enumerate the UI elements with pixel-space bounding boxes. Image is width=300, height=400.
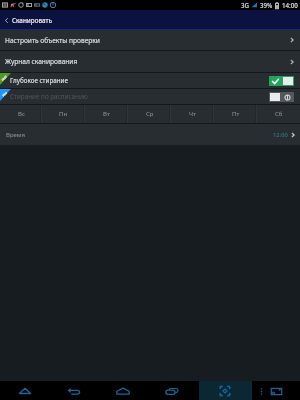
staticText: Вт <box>103 110 110 118</box>
button[interactable]: Switch off <box>269 92 294 102</box>
button[interactable]: Resize window <box>267 382 285 400</box>
button[interactable]: Back <box>65 382 83 400</box>
button[interactable]: Чт <box>171 105 214 123</box>
staticText: 3G <box>241 1 250 9</box>
staticText: Чт <box>189 110 196 118</box>
button[interactable]: Время <box>0 124 300 145</box>
button[interactable]: Screenshot <box>216 382 234 400</box>
staticText: Пн <box>59 110 68 118</box>
button[interactable]: Вс <box>0 105 42 123</box>
button[interactable]: Настроить объекты проверки <box>0 30 300 50</box>
staticText: Ср <box>146 110 154 118</box>
button[interactable]: Navigate up <box>16 382 34 400</box>
button[interactable]: Пт <box>214 105 257 123</box>
button[interactable]: Вт <box>85 105 128 123</box>
button[interactable]: Recent apps <box>163 382 181 400</box>
staticText: 12:00 <box>273 131 288 139</box>
staticText: PRO <box>1 90 9 98</box>
staticText: Настроить объекты проверки <box>5 36 100 45</box>
button[interactable]: Switch on <box>269 76 294 86</box>
staticText: Стирание по расписанию <box>10 92 88 101</box>
button[interactable]: Журнал сканирования <box>0 51 300 72</box>
staticText: 39% <box>260 1 273 9</box>
button[interactable]: Сканировать <box>0 11 59 30</box>
staticText: Сб <box>275 110 283 118</box>
staticText: Сканировать <box>12 16 53 25</box>
button[interactable]: Сб <box>257 105 300 123</box>
button[interactable]: More options <box>252 382 270 400</box>
button[interactable]: Ср <box>128 105 171 123</box>
button[interactable]: PRO <box>0 89 300 104</box>
staticText: 14:00 <box>282 1 298 9</box>
staticText: Глубокое стирание <box>10 76 69 85</box>
button[interactable]: FREE <box>0 73 300 88</box>
button[interactable]: Home <box>114 382 132 400</box>
button[interactable]: Пн <box>42 105 85 123</box>
staticText: FREE <box>1 74 8 82</box>
staticText: Время <box>6 131 25 139</box>
staticText: Журнал сканирования <box>5 57 78 66</box>
staticText: Пт <box>232 110 240 118</box>
staticText: Вс <box>18 110 25 118</box>
